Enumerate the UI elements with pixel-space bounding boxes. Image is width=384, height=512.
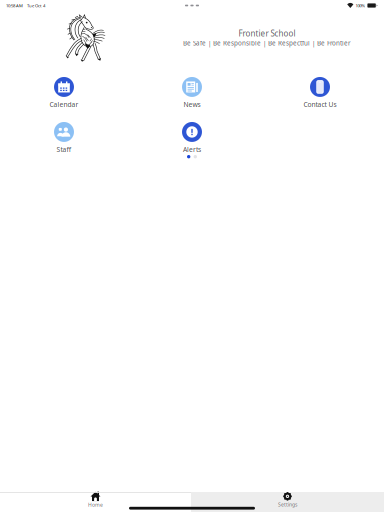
staticText: 10:58 AM — [6, 3, 23, 8]
button[interactable]: Settings — [191, 492, 384, 512]
staticText: Home — [88, 501, 103, 508]
staticText: Tue Oct 4 — [27, 3, 45, 8]
staticText: Be Safe | Be Responsible | Be Respectful… — [183, 39, 351, 47]
button[interactable]: Alerts — [128, 122, 256, 154]
staticText: Contact Us — [303, 100, 336, 109]
staticText: Alerts — [183, 145, 201, 154]
button[interactable]: News — [128, 77, 256, 109]
staticText: Frontier School — [238, 28, 295, 39]
staticText: Calendar — [49, 100, 78, 109]
staticText: News — [183, 100, 200, 109]
button[interactable]: Home — [0, 492, 191, 512]
button[interactable]: Staff — [0, 122, 128, 154]
button[interactable]: Contact Us — [256, 77, 384, 109]
staticText: 100% — [355, 3, 365, 8]
button[interactable]: Calendar — [0, 77, 128, 109]
staticText: Staff — [56, 145, 71, 154]
staticText: Settings — [278, 501, 297, 508]
